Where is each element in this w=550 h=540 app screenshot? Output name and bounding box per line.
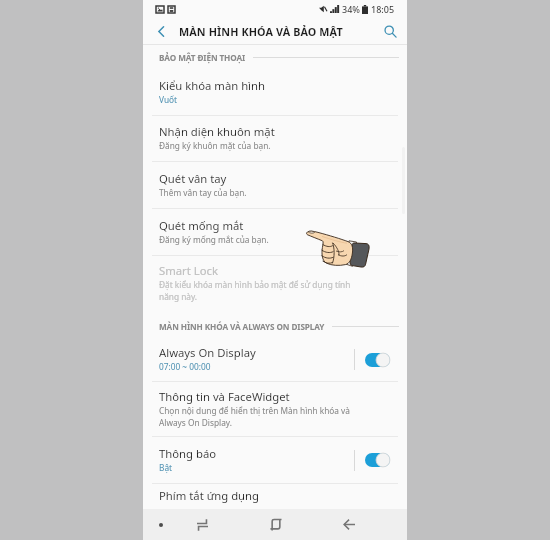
button[interactable]: Toggle [365,353,390,367]
staticText: MÀN HÌNH KHÓA VÀ BẢO MẬT [179,24,343,39]
staticText: Bật [159,462,173,473]
button[interactable]: Nhận diện khuôn mặt [143,116,407,161]
button[interactable]: Always On Display [143,338,407,381]
staticText: Chọn nội dung để hiển thị trên Màn hình … [159,405,350,416]
button[interactable]: Smart Lock [143,256,407,311]
button[interactable]: Thông báo [143,437,407,483]
button[interactable]: Search [373,18,407,45]
staticText: MÀN HÌNH KHÓA VÀ ALWAYS ON DISPLAY [159,321,325,332]
staticText: Nhận diện khuôn mặt [159,124,275,139]
button[interactable]: Back [335,509,363,540]
staticText: Quét mống mắt [159,218,244,233]
staticText: 07:00 ~ 00:00 [159,361,211,372]
staticText: Đăng ký mống mắt của bạn. [159,234,269,245]
button[interactable]: Home [262,509,290,540]
staticText: Smart Lock [159,263,218,278]
button[interactable]: Thông tin và FaceWidget [143,382,407,436]
staticText: Thông báo [159,446,217,461]
staticText: Quét vân tay [159,171,227,186]
staticText: Kiểu khóa màn hình [159,78,265,93]
button[interactable]: Toggle [365,453,390,467]
staticText: Thêm vân tay của bạn. [159,187,247,198]
staticText: 34% [342,3,360,15]
button[interactable]: Quét mống mắt [143,209,407,255]
staticText: BẢO MẬT ĐIỆN THOẠI [159,52,246,63]
staticText: Đăng ký khuôn mặt của bạn. [159,140,271,151]
staticText: năng này. [159,291,198,302]
button[interactable]: Back [143,18,179,45]
button[interactable]: Quét vân tay [143,162,407,208]
button[interactable]: Recent apps [188,509,216,540]
staticText: Always On Display. [159,417,232,428]
staticText: Thông tin và FaceWidget [159,389,290,404]
staticText: Vuốt [159,94,178,105]
staticText: 18:05 [371,3,395,15]
staticText: Phím tắt ứng dụng [159,488,260,503]
button[interactable]: Kiểu khóa màn hình [143,69,407,115]
button[interactable]: Phím tắt ứng dụng [143,484,407,509]
staticText: Always On Display [159,345,256,360]
button[interactable]: Hide keyboard [150,509,172,540]
staticText: Đặt kiểu khóa màn hình bảo mật để sử dụn… [159,279,351,290]
